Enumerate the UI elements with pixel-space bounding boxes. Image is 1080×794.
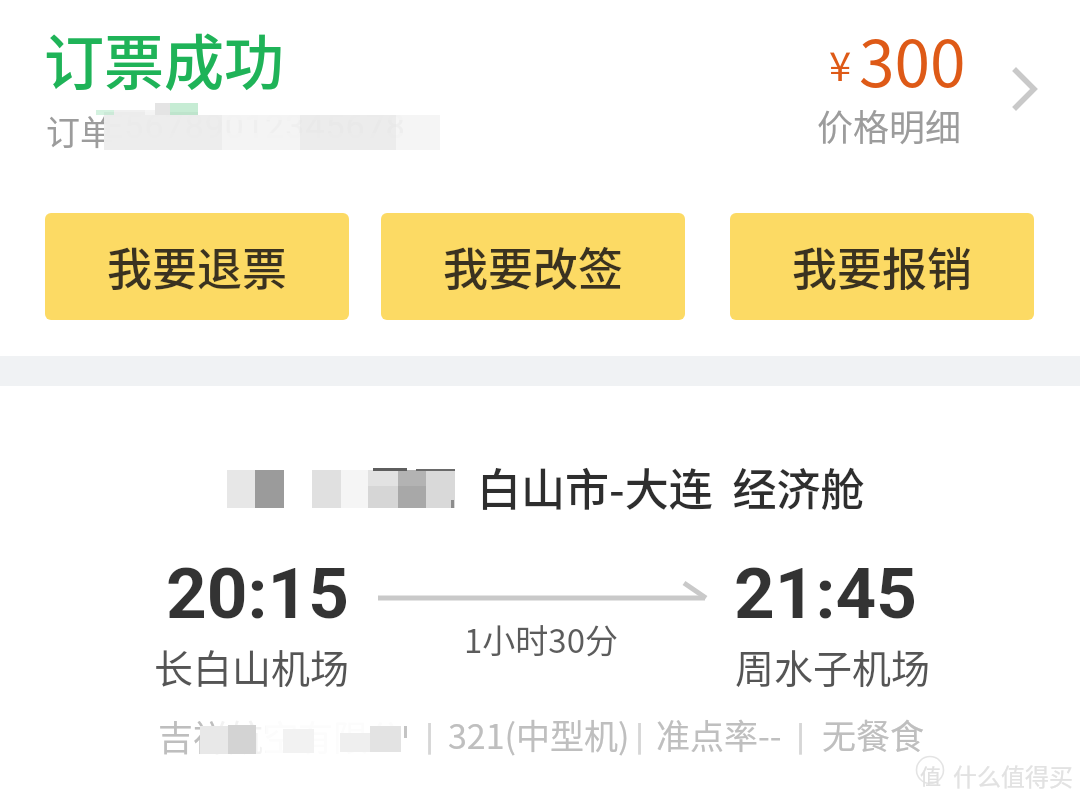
staticText: 什么值得买 — [953, 758, 1073, 793]
staticText: 21:45 — [734, 552, 917, 635]
button[interactable]: ¥ — [800, 8, 1050, 148]
staticText: 1小时30分 — [464, 615, 618, 663]
button[interactable]: 我要退票 — [45, 213, 349, 320]
staticText: ¥ — [829, 35, 852, 93]
staticText: 无餐食 — [822, 710, 924, 759]
button[interactable]: 我要改签 — [381, 213, 685, 320]
staticText: 值 — [920, 760, 941, 790]
staticText: 准点率-- — [656, 710, 782, 759]
staticText: 321(中型机) — [448, 710, 630, 759]
other: 查看价格明细 — [990, 53, 1050, 113]
staticText: 300 — [859, 13, 966, 106]
staticText: 长白山机场 — [154, 638, 350, 694]
staticText: 订单 — [46, 106, 114, 155]
staticText: 我要改签 — [443, 234, 624, 299]
staticText: | — [425, 715, 435, 758]
staticText: 周水子机场 — [735, 638, 931, 694]
staticText: 白山市-大连 经济舱 — [477, 455, 865, 519]
staticText: 吉祥航空有限公司 — [158, 710, 439, 761]
button[interactable]: 白山市-大连 经济舱 — [0, 386, 1080, 794]
staticText: 我要退票 — [107, 234, 288, 299]
staticText: E56789012345678 — [104, 106, 406, 146]
button[interactable]: 我要报销 — [730, 213, 1034, 320]
staticText: 订票成功 — [44, 15, 284, 102]
staticText: 我要报销 — [792, 234, 973, 299]
staticText: | — [796, 715, 806, 758]
staticText: | — [635, 715, 645, 758]
staticText: 20:15 — [166, 552, 349, 635]
staticText: 价格明细 — [817, 99, 962, 151]
